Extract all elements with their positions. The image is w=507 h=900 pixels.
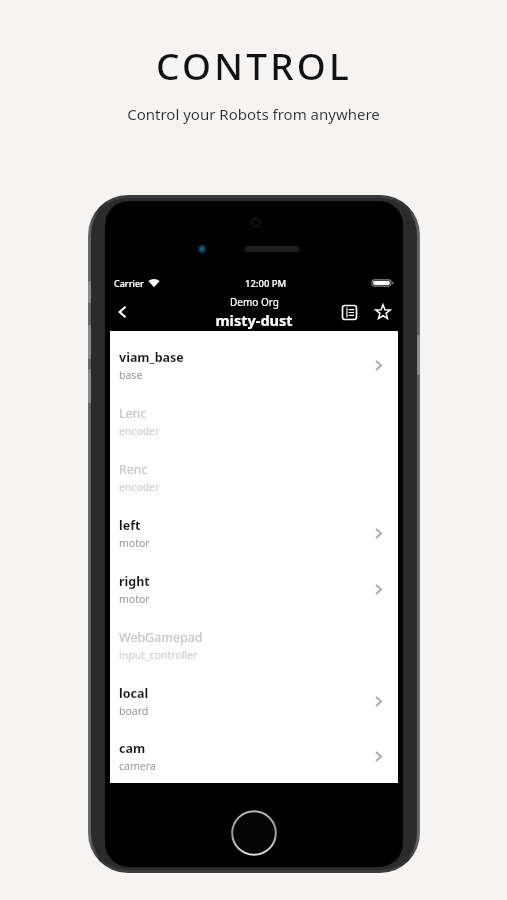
staticText: motor	[119, 536, 150, 550]
staticText: motor	[119, 592, 150, 606]
staticText: cam	[119, 740, 146, 757]
button[interactable]: left	[110, 505, 398, 561]
button[interactable]: Favorite	[369, 298, 397, 326]
staticText: Control your Robots from anywhere	[127, 104, 380, 124]
staticText: viam_base	[119, 349, 184, 366]
staticText: camera	[119, 759, 156, 773]
staticText: base	[119, 368, 143, 382]
staticText: CONTROL	[156, 40, 352, 90]
button[interactable]: Logs	[335, 298, 363, 326]
staticText: 12:00 PM	[245, 277, 287, 290]
staticText: encoder	[119, 424, 160, 438]
staticText: board	[119, 704, 149, 718]
staticText: left	[119, 517, 141, 534]
staticText: input_controller	[119, 648, 198, 662]
button: Lenc	[110, 393, 398, 449]
staticText: WebGamepad	[119, 629, 203, 646]
staticText: encoder	[119, 480, 160, 494]
staticText: Carrier	[114, 277, 144, 289]
button: Renc	[110, 449, 398, 505]
staticText: Demo Org	[230, 295, 279, 309]
staticText: right	[119, 573, 150, 590]
button[interactable]: local	[110, 673, 398, 729]
button[interactable]: viam_base	[110, 337, 398, 393]
button[interactable]: Back	[109, 298, 137, 326]
staticText: local	[119, 685, 149, 702]
button[interactable]: cam	[110, 729, 398, 783]
button[interactable]: right	[110, 561, 398, 617]
button: WebGamepad	[110, 617, 398, 673]
staticText: Renc	[119, 461, 148, 478]
staticText: Lenc	[119, 405, 147, 422]
button[interactable]: Home	[231, 810, 277, 856]
staticText: misty-dust	[215, 310, 293, 330]
